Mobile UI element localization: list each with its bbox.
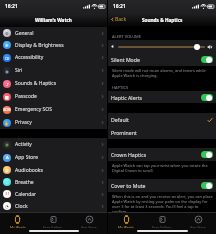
button[interactable]: ♪ bbox=[0, 77, 107, 90]
staticText: Haptic Alerts bbox=[111, 94, 143, 101]
button[interactable]: ● bbox=[0, 164, 107, 176]
button[interactable]: ■ bbox=[0, 90, 107, 103]
staticText: Siri bbox=[15, 67, 23, 74]
staticText: A bbox=[6, 155, 9, 161]
button[interactable]: ● bbox=[0, 176, 107, 188]
button[interactable]: Toggle on bbox=[201, 151, 213, 158]
staticText: Ⓘ bbox=[5, 56, 10, 61]
staticText: Apple Watch can tap your wrist when you … bbox=[112, 163, 213, 173]
button[interactable]: Ⓘ bbox=[0, 51, 107, 64]
button[interactable]: Face Gallery bbox=[35, 213, 71, 228]
button[interactable]: Crown Haptics bbox=[108, 148, 216, 161]
button[interactable]: App Store bbox=[180, 213, 216, 228]
button[interactable]: SOS bbox=[0, 103, 107, 116]
staticText: Activity bbox=[15, 141, 32, 148]
staticText: ✋ bbox=[4, 121, 10, 126]
staticText: Face Gallery bbox=[43, 225, 63, 228]
staticText: App Store bbox=[190, 225, 206, 228]
button[interactable]: Prominent bbox=[108, 126, 216, 139]
staticText: General bbox=[15, 30, 34, 37]
staticText: ☀ bbox=[5, 43, 9, 48]
staticText: ■ bbox=[5, 95, 9, 100]
staticText: Calendar bbox=[15, 191, 37, 198]
staticText: 31 bbox=[5, 191, 10, 197]
staticText: Breathe bbox=[15, 179, 34, 186]
staticText: My Watch bbox=[118, 225, 134, 228]
staticText: Face Gallery bbox=[152, 225, 172, 228]
button[interactable]: 31 bbox=[0, 188, 107, 200]
staticText: SOS bbox=[3, 107, 11, 113]
button[interactable]: Haptic Alerts bbox=[108, 91, 216, 103]
staticText: Silent mode will not mute alarms, and ti… bbox=[112, 68, 213, 78]
staticText: Prominent bbox=[111, 129, 137, 136]
button[interactable]: My Watch bbox=[0, 213, 35, 228]
staticText: ♪ bbox=[6, 82, 9, 87]
button[interactable]: Siri bbox=[0, 64, 107, 77]
staticText: Default bbox=[111, 116, 129, 123]
staticText: Passcode bbox=[15, 93, 37, 100]
button[interactable]: Toggle on bbox=[201, 182, 213, 189]
button[interactable]: Toggle on bbox=[201, 56, 213, 63]
staticText: HAPTICS bbox=[112, 85, 129, 90]
staticText: ● bbox=[5, 168, 9, 173]
staticText: Silent Mode bbox=[111, 56, 140, 63]
button[interactable]: Back bbox=[108, 15, 129, 24]
button[interactable]: Activity bbox=[0, 138, 107, 151]
staticText: Accessibility bbox=[15, 54, 44, 61]
staticText: ALERT VOLUME bbox=[112, 34, 141, 39]
button[interactable]: Default bbox=[108, 113, 216, 126]
staticText: ⚙ bbox=[5, 31, 9, 36]
staticText: Crown Haptics bbox=[111, 151, 147, 158]
staticText: Clock bbox=[15, 203, 28, 210]
staticText: Emergency SOS bbox=[15, 106, 52, 113]
staticText: App Store bbox=[15, 154, 39, 161]
staticText: William's Watch bbox=[35, 17, 72, 23]
staticText: Sounds & Haptics bbox=[15, 80, 57, 87]
button[interactable]: Silent Mode bbox=[108, 53, 216, 66]
staticText: When this is on and you receive an alert… bbox=[112, 194, 213, 212]
staticText: App Store bbox=[81, 225, 97, 228]
button[interactable]: Toggle on bbox=[201, 94, 213, 101]
staticText: 16:21 bbox=[5, 3, 18, 10]
button[interactable]: My Watch bbox=[108, 213, 144, 228]
staticText: 16:21 bbox=[113, 3, 126, 10]
staticText: Privacy bbox=[15, 119, 32, 126]
staticText: Display & Brightness bbox=[15, 42, 64, 49]
button[interactable]: Face Gallery bbox=[144, 213, 180, 228]
button[interactable]: ⚙ bbox=[0, 27, 107, 39]
staticText: Back bbox=[115, 16, 127, 23]
staticText: Sounds & Haptics bbox=[142, 17, 183, 23]
button[interactable]: A bbox=[0, 151, 107, 164]
button[interactable]: ✋ bbox=[0, 116, 107, 129]
staticText: ◔ bbox=[5, 204, 9, 209]
button[interactable]: ☀ bbox=[0, 39, 107, 51]
staticText: Cover to Mute bbox=[111, 182, 146, 189]
staticText: My Watch bbox=[10, 225, 26, 228]
button[interactable]: Cover to Mute bbox=[108, 179, 216, 192]
staticText: Audiobooks bbox=[15, 167, 43, 174]
button[interactable]: ◔ bbox=[0, 200, 107, 212]
button[interactable]: App Store bbox=[71, 213, 107, 228]
staticText: ● bbox=[5, 180, 9, 185]
